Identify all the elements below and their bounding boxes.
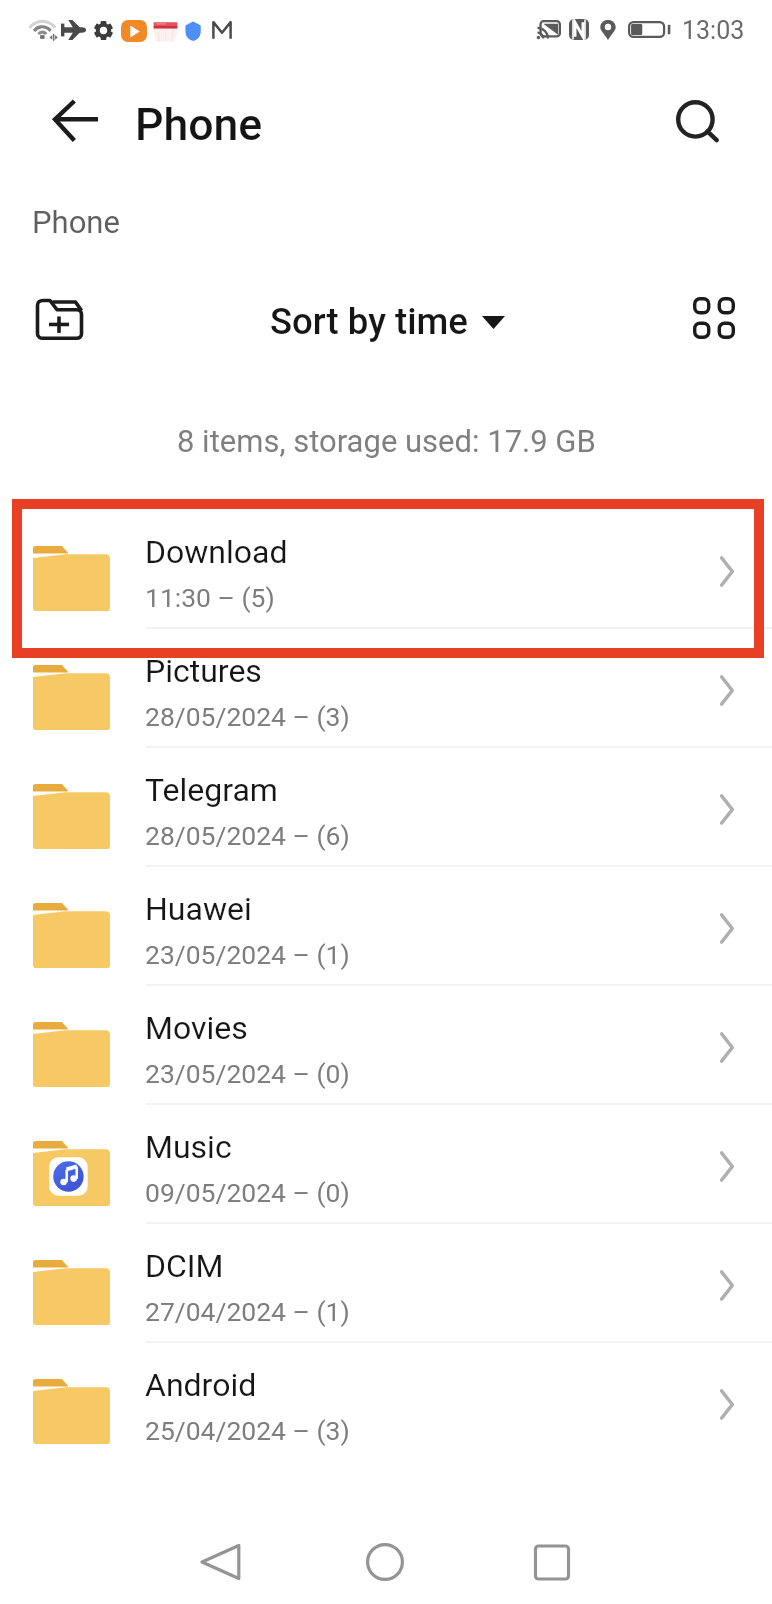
button[interactable]: Switch to grid view: [682, 286, 746, 350]
staticText: 28/05/2024 – (3): [145, 701, 350, 732]
staticText: Sort by time: [270, 300, 468, 343]
button[interactable]: New folder: [27, 287, 91, 351]
staticText: Music: [145, 1128, 232, 1166]
staticText: Android: [145, 1366, 257, 1404]
button[interactable]: Download: [0, 510, 772, 629]
button[interactable]: Pictures: [0, 629, 772, 748]
staticText: 27/04/2024 – (1): [145, 1296, 350, 1327]
staticText: 09/05/2024 – (0): [145, 1177, 350, 1208]
staticText: 25/04/2024 – (3): [145, 1415, 350, 1446]
staticText: 28/05/2024 – (6): [145, 820, 350, 851]
button[interactable]: Home: [340, 1517, 430, 1604]
staticText: Phone: [135, 99, 263, 151]
button[interactable]: Search: [664, 87, 722, 145]
button[interactable]: Phone: [32, 204, 120, 240]
staticText: Movies: [145, 1009, 248, 1047]
button[interactable]: Telegram: [0, 748, 772, 867]
staticText: 11:30 – (5): [145, 582, 275, 613]
staticText: Pictures: [145, 652, 262, 690]
button[interactable]: Back: [175, 1517, 265, 1604]
staticText: 23/05/2024 – (1): [145, 939, 350, 970]
button[interactable]: Android: [0, 1343, 772, 1462]
staticText: 8 items, storage used: 17.9 GB: [177, 423, 596, 459]
staticText: DCIM: [145, 1247, 224, 1285]
button[interactable]: Music: [0, 1105, 772, 1224]
button[interactable]: Huawei: [0, 867, 772, 986]
button[interactable]: Movies: [0, 986, 772, 1105]
staticText: Download: [145, 533, 288, 571]
staticText: Huawei: [145, 890, 252, 928]
staticText: 13:03: [682, 16, 745, 45]
button[interactable]: Back: [47, 94, 105, 148]
staticText: 23/05/2024 – (0): [145, 1058, 350, 1089]
button[interactable]: Recent apps: [507, 1517, 597, 1604]
staticText: Telegram: [145, 771, 278, 809]
button[interactable]: Sort by time: [270, 300, 507, 343]
button[interactable]: DCIM: [0, 1224, 772, 1343]
